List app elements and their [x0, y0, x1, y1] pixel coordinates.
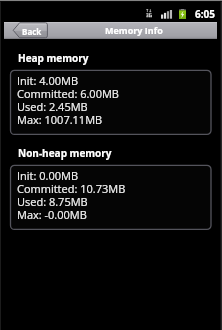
- staticText: Init: 4.00MB: [17, 73, 79, 88]
- staticText: Used: 8.75MB: [17, 194, 88, 209]
- staticText: Heap memory: [18, 51, 89, 65]
- staticText: Max: -0.00MB: [17, 207, 87, 222]
- staticText: 6:05: [195, 7, 216, 21]
- staticText: Committed: 6.00MB: [17, 86, 119, 101]
- staticText: Memory Info: [105, 24, 163, 36]
- staticText: Back: [22, 26, 42, 37]
- staticText: Max: 1007.11MB: [17, 112, 103, 127]
- staticText: Committed: 10.73MB: [17, 181, 126, 196]
- staticText: Init: 0.00MB: [17, 168, 79, 183]
- staticText: Used: 2.45MB: [17, 99, 88, 114]
- button[interactable]: Back: [13, 22, 48, 39]
- staticText: Non-heap memory: [18, 146, 112, 160]
